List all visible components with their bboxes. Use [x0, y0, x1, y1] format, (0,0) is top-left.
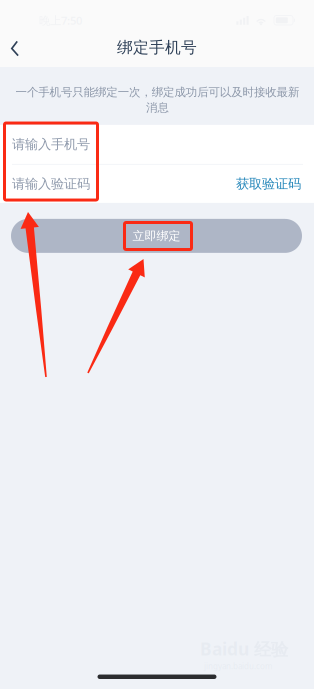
button[interactable]: 请输入手机号 — [0, 125, 314, 164]
staticText: 立即绑定 — [132, 228, 180, 243]
button[interactable]: 请输入验证码 — [0, 165, 236, 203]
staticText: 一个手机号只能绑定一次，绑定成功后可以及时接收最新消息 — [15, 85, 299, 115]
staticText: 请输入验证码 — [12, 176, 90, 192]
staticText: 获取验证码 — [236, 176, 301, 192]
staticText: Baidu 经验 — [200, 637, 288, 661]
staticText: 绑定手机号 — [117, 38, 197, 57]
button[interactable]: 获取验证码 — [236, 165, 314, 203]
staticText: 请输入手机号 — [12, 136, 90, 153]
button[interactable]: 立即绑定 — [11, 219, 302, 253]
button[interactable]: Back — [0, 27, 30, 68]
